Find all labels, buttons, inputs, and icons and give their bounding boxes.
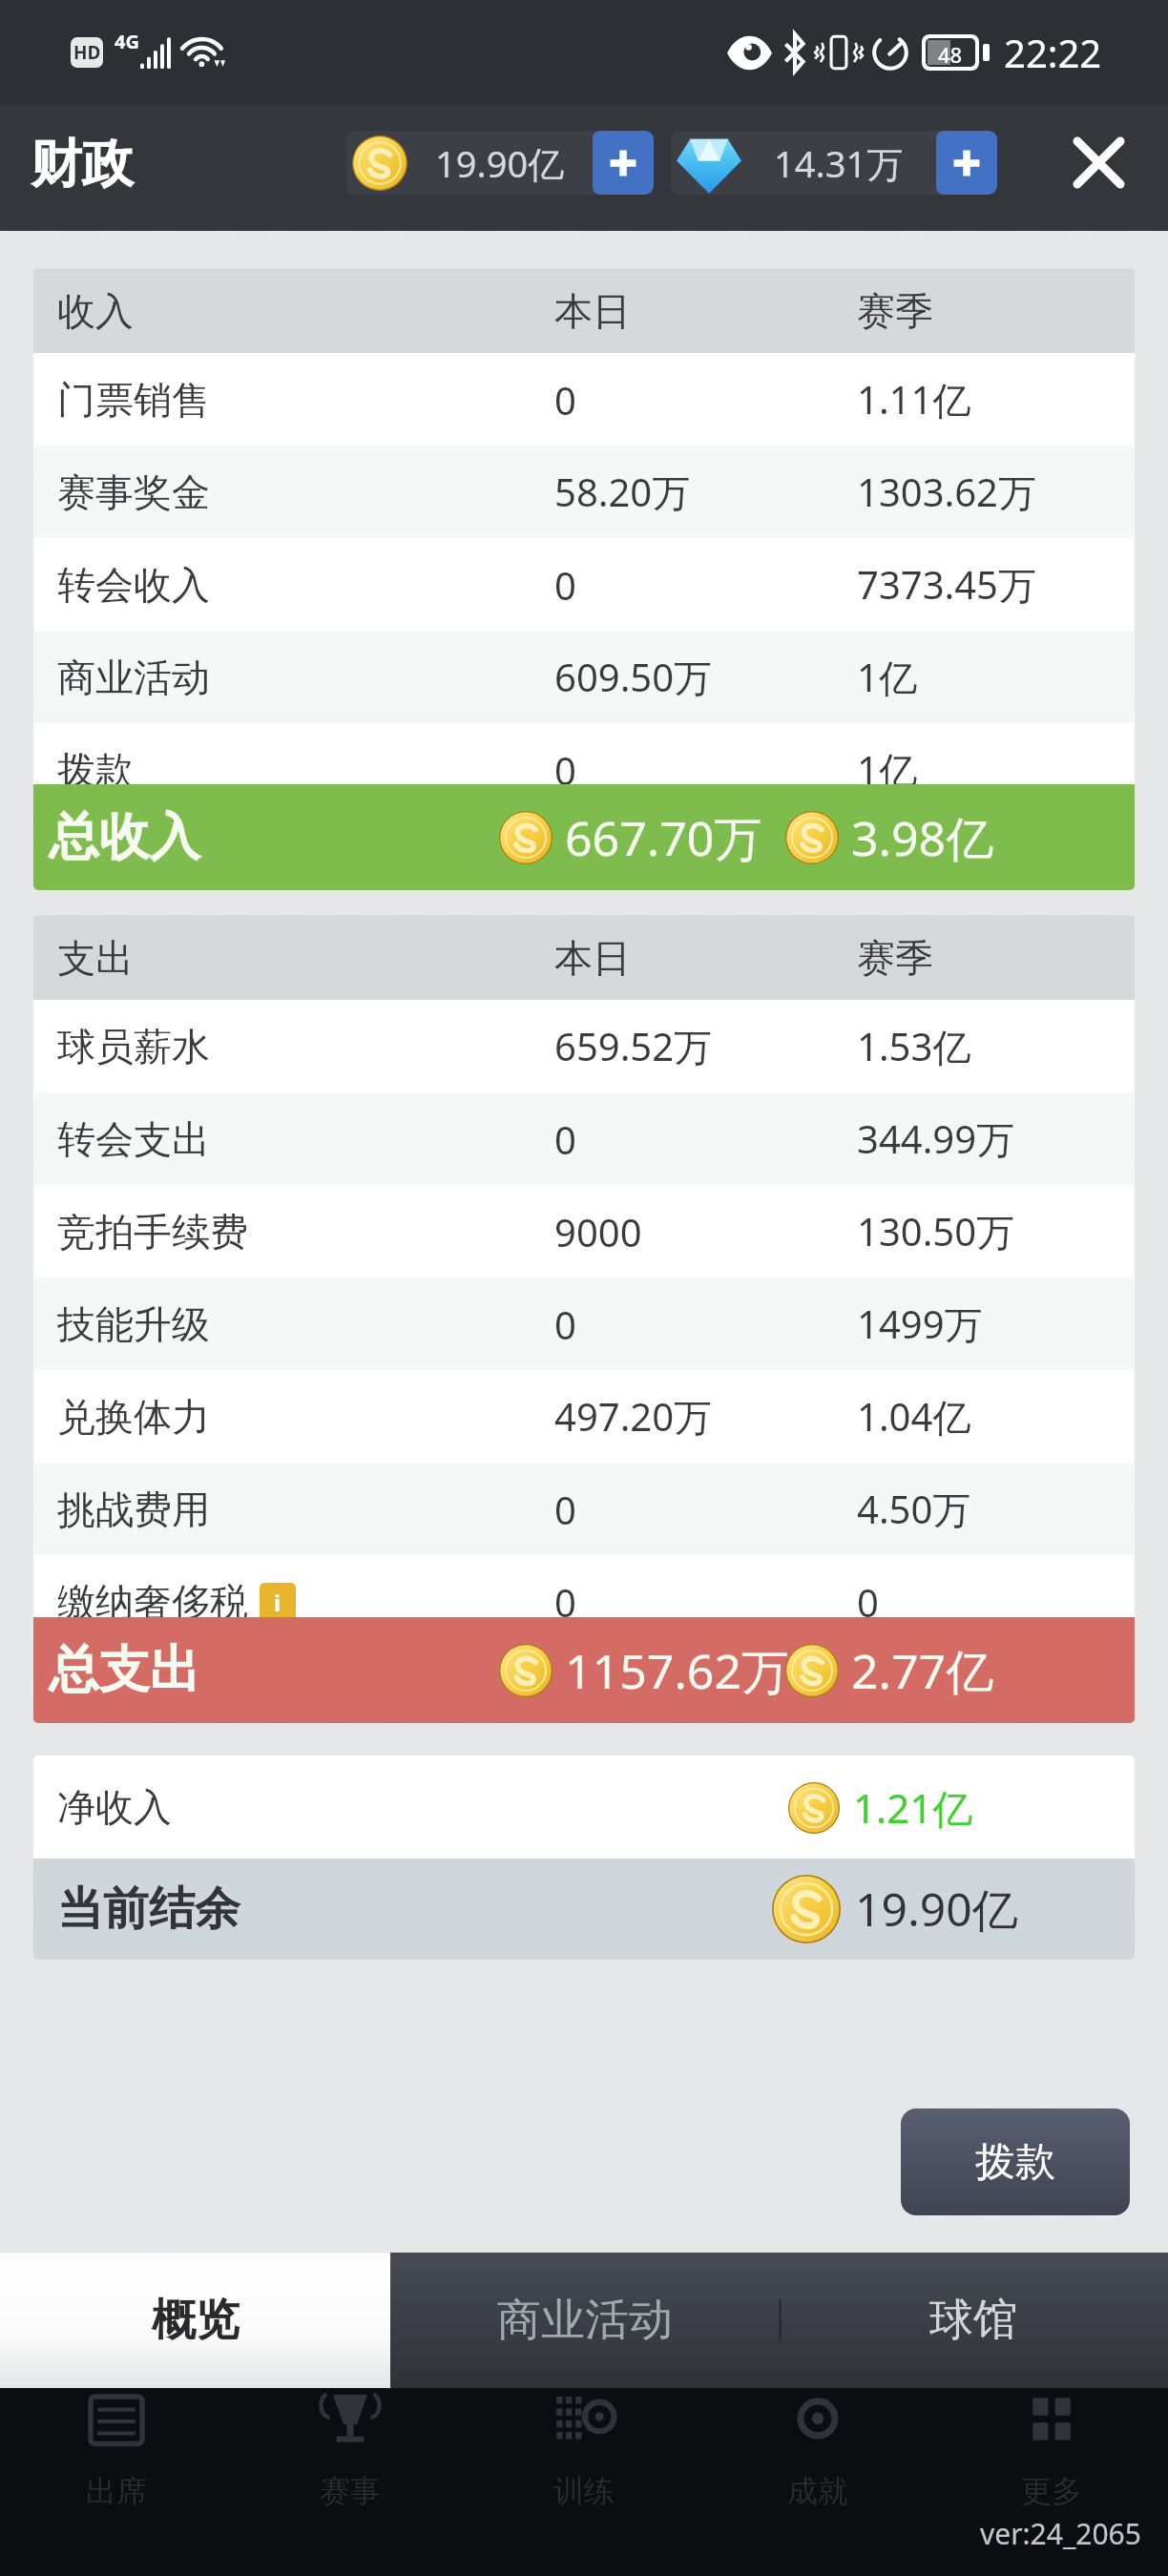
staticText: 总支出 [49,1638,200,1702]
staticText: 商业活动 [57,654,210,701]
staticText: 1.04亿 [857,1390,971,1443]
staticText: 商业活动 [497,2293,673,2348]
staticText: 训练 [553,2472,615,2510]
button[interactable]: 训练 [467,2388,700,2541]
staticText: 财政 [31,132,134,197]
button[interactable]: 赛事奖金 [33,446,1135,538]
staticText: 总收入 [49,805,200,869]
staticText: 本日 [554,934,631,982]
staticText: 130.50万 [857,1205,1015,1257]
staticText: 净收入 [57,1783,172,1831]
button[interactable]: Add [593,131,654,195]
staticText: 22:22 [1004,27,1102,78]
staticText: 4.50万 [857,1483,971,1535]
staticText: 概览 [152,2293,240,2348]
staticText: 3.98亿 [851,805,994,870]
staticText: 赛事奖金 [57,468,210,516]
button[interactable]: 更多 [934,2388,1168,2541]
staticText: 更多 [1021,2472,1082,2510]
staticText: 0 [554,1298,576,1350]
button[interactable]: 净收入 [33,1755,1135,1859]
staticText: 1303.62万 [857,466,1036,518]
staticText: 19.90亿 [855,1878,1018,1941]
button[interactable]: 转会支出 [33,1092,1135,1185]
staticText: 竞拍手续费 [57,1208,248,1256]
staticText: 659.52万 [554,1020,713,1072]
staticText: 0 [554,744,576,784]
staticText: 赛季 [857,934,933,982]
staticText: 兑换体力 [57,1393,210,1441]
staticText: HD [73,40,101,65]
button[interactable]: 门票销售 [33,353,1135,446]
button[interactable]: 球员薪水 [33,1000,1135,1092]
staticText: 2.77亿 [851,1638,994,1703]
staticText: 赛事 [320,2472,381,2510]
staticText: 1.11亿 [857,373,971,426]
staticText: 收入 [57,287,134,335]
staticText: ver:24_2065 [980,2514,1141,2553]
staticText: 赛季 [857,287,933,335]
staticText: 支出 [57,934,134,982]
staticText: 缴纳奢侈税 [57,1578,248,1617]
button[interactable]: 技能升级 [33,1278,1135,1370]
staticText: 转会支出 [57,1115,210,1163]
staticText: 成就 [787,2472,848,2510]
staticText: 技能升级 [57,1300,210,1348]
button[interactable]: 当前结余 [33,1859,1135,1960]
button[interactable]: 成就 [700,2388,934,2541]
staticText: 出席 [86,2472,147,2510]
staticText: 9000 [554,1206,642,1257]
staticText: 1亿 [857,651,917,703]
staticText: 0 [554,1576,576,1617]
staticText: 0 [857,1576,879,1617]
button[interactable]: 出席 [0,2388,233,2541]
button[interactable]: 商业活动 [390,2253,779,2388]
staticText: 0 [554,1113,576,1165]
button[interactable]: 概览 [0,2253,390,2388]
button[interactable]: 赛事 [233,2388,467,2541]
staticText: i [274,1587,282,1617]
staticText: 门票销售 [57,376,210,424]
button[interactable]: Close [1055,119,1141,205]
staticText: 609.50万 [554,651,713,703]
staticText: 1.21亿 [853,1780,973,1835]
button[interactable]: 缴纳奢侈税 [33,1555,1135,1617]
button[interactable]: 球馆 [779,2253,1168,2388]
staticText: 球员薪水 [57,1023,210,1070]
staticText: 14.31万 [774,138,904,188]
button[interactable]: 商业活动 [33,631,1135,723]
button[interactable]: 竞拍手续费 [33,1185,1135,1278]
staticText: 19.90亿 [435,138,565,188]
staticText: 7373.45万 [857,558,1036,611]
staticText: 344.99万 [857,1112,1015,1165]
staticText: 667.70万 [565,805,762,870]
button[interactable]: Add [936,131,997,195]
staticText: 58.20万 [554,466,691,518]
staticText: 拨款 [57,746,134,784]
staticText: 1157.62万 [565,1638,789,1703]
staticText: 1亿 [857,743,917,784]
staticText: 0 [554,374,576,426]
staticText: 当前结余 [57,1880,240,1938]
staticText: 挑战费用 [57,1485,210,1533]
button[interactable]: 挑战费用 [33,1463,1135,1555]
button[interactable]: 19.90亿 [346,131,654,195]
button[interactable]: 拨款 [901,2109,1130,2215]
button[interactable]: 兑换体力 [33,1370,1135,1463]
staticText: 球馆 [929,2293,1017,2348]
button[interactable]: 14.31万 [671,131,997,195]
button[interactable]: 拨款 [33,723,1135,784]
staticText: 拨款 [975,2137,1055,2188]
staticText: 48 [938,40,963,65]
staticText: 本日 [554,287,631,335]
staticText: 转会收入 [57,561,210,609]
staticText: 1.53亿 [857,1020,971,1072]
staticText: 497.20万 [554,1390,713,1443]
button[interactable]: 转会收入 [33,538,1135,631]
staticText: 4G [115,29,139,54]
staticText: 1499万 [857,1298,983,1350]
staticText: 0 [554,1484,576,1535]
staticText: 0 [554,559,576,611]
